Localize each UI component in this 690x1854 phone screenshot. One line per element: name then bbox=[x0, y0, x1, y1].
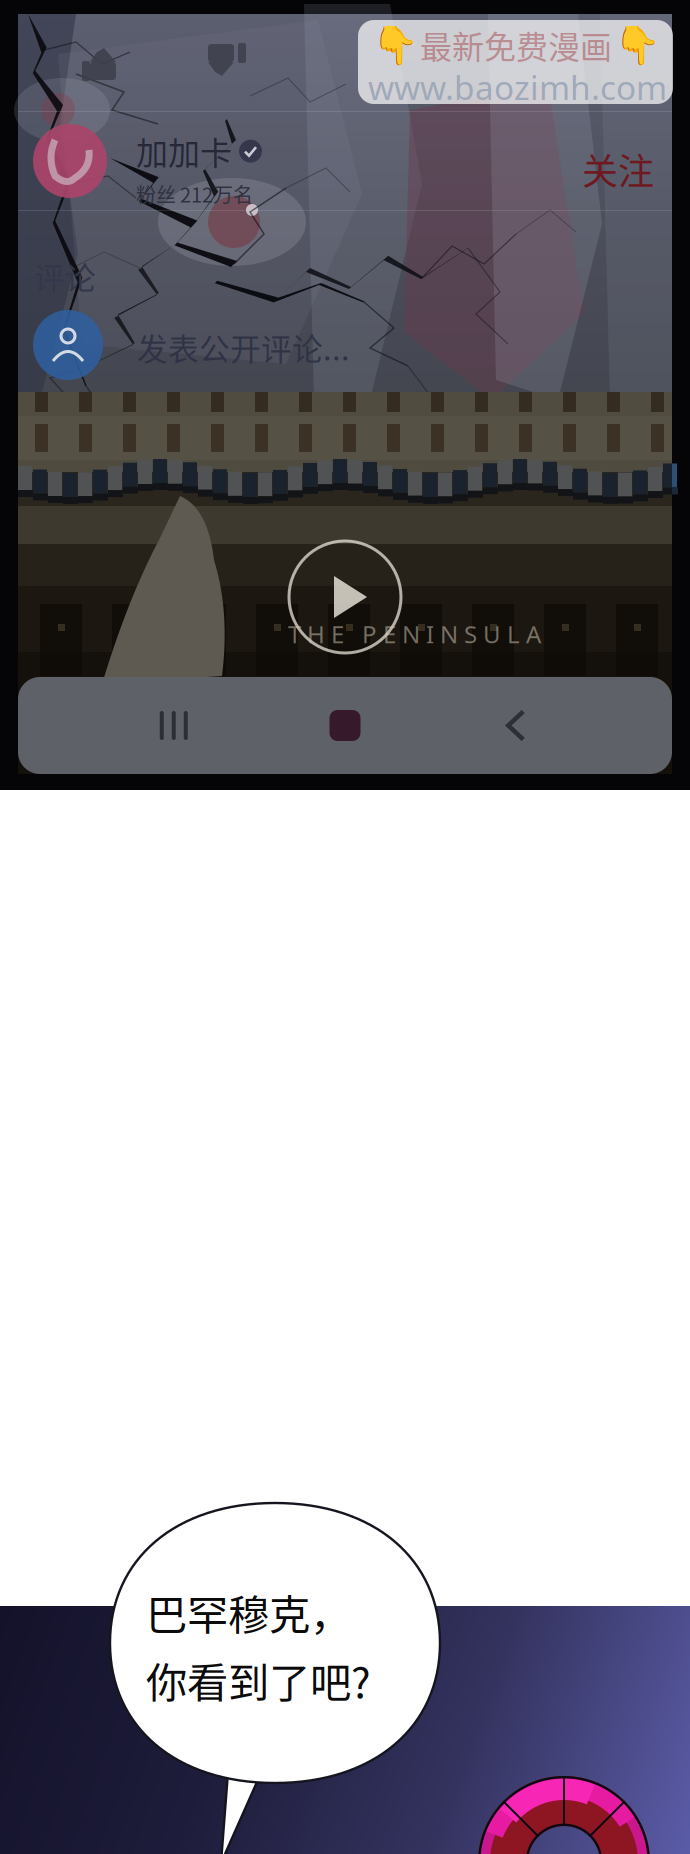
staticText: 评论 bbox=[34, 254, 96, 298]
staticText: 巴罕穆克， bbox=[146, 1582, 351, 1642]
staticText: 👇 bbox=[614, 24, 660, 66]
button[interactable]: 关注 bbox=[568, 133, 668, 205]
staticText: 最新免费漫画 bbox=[420, 22, 612, 68]
button[interactable]: Dislike bbox=[208, 42, 254, 88]
staticText: 粉丝 212万名 bbox=[136, 179, 253, 208]
button[interactable]: Back bbox=[493, 702, 539, 748]
staticText: 你看到了吧? bbox=[146, 1650, 371, 1710]
staticText: 发表公开评论... bbox=[137, 325, 350, 369]
button[interactable]: Home bbox=[329, 710, 360, 741]
staticText: 加加卡 bbox=[136, 128, 232, 174]
staticText: www.baozimh.com bbox=[368, 65, 667, 109]
staticText: T H E P E N I N S U L A bbox=[288, 618, 541, 650]
button[interactable]: Recents bbox=[151, 702, 197, 748]
button[interactable]: Channel avatar bbox=[33, 124, 107, 198]
button[interactable]: 发表公开评论... bbox=[18, 306, 672, 390]
staticText: 👇 bbox=[372, 24, 418, 66]
staticText: 关注 bbox=[582, 143, 654, 195]
button[interactable]: Like bbox=[82, 42, 128, 88]
